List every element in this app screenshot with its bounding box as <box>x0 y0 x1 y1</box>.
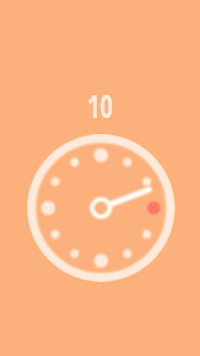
staticText: 10 <box>87 83 113 128</box>
button[interactable]: Timer clock, 10 minutes <box>27 134 175 282</box>
